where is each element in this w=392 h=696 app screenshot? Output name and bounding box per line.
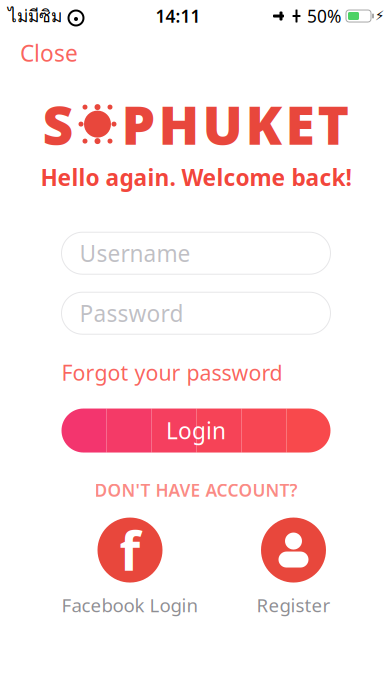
button[interactable]: Register (256, 518, 330, 617)
staticText: H (158, 89, 199, 159)
staticText: Hello again. Welcome back! (40, 162, 351, 192)
staticText: E (285, 89, 314, 159)
staticText: Login (166, 415, 226, 446)
staticText: f (119, 515, 140, 585)
button[interactable]: Forgot your password (61, 358, 282, 386)
button[interactable]: f (61, 518, 198, 617)
staticText: Facebook Login (61, 593, 198, 617)
staticText: ไม่มีซิม (8, 3, 62, 29)
button[interactable]: Login (61, 408, 330, 452)
staticText: P (121, 89, 155, 159)
staticText: U (202, 89, 242, 159)
staticText: S (42, 89, 73, 159)
staticText: 14:11 (155, 4, 200, 27)
staticText: Register (256, 593, 330, 617)
staticText: DON'T HAVE ACCOUNT? (94, 478, 297, 501)
staticText: ⚡︎ (375, 8, 384, 23)
staticText: Close (20, 38, 78, 68)
staticText: Password (79, 298, 183, 328)
button[interactable]: Close (0, 28, 98, 78)
staticText: Forgot your password (61, 358, 282, 386)
staticText: T (317, 89, 349, 159)
staticText: K (245, 89, 282, 159)
staticText: 50% (307, 4, 341, 27)
staticText: Username (79, 238, 190, 268)
